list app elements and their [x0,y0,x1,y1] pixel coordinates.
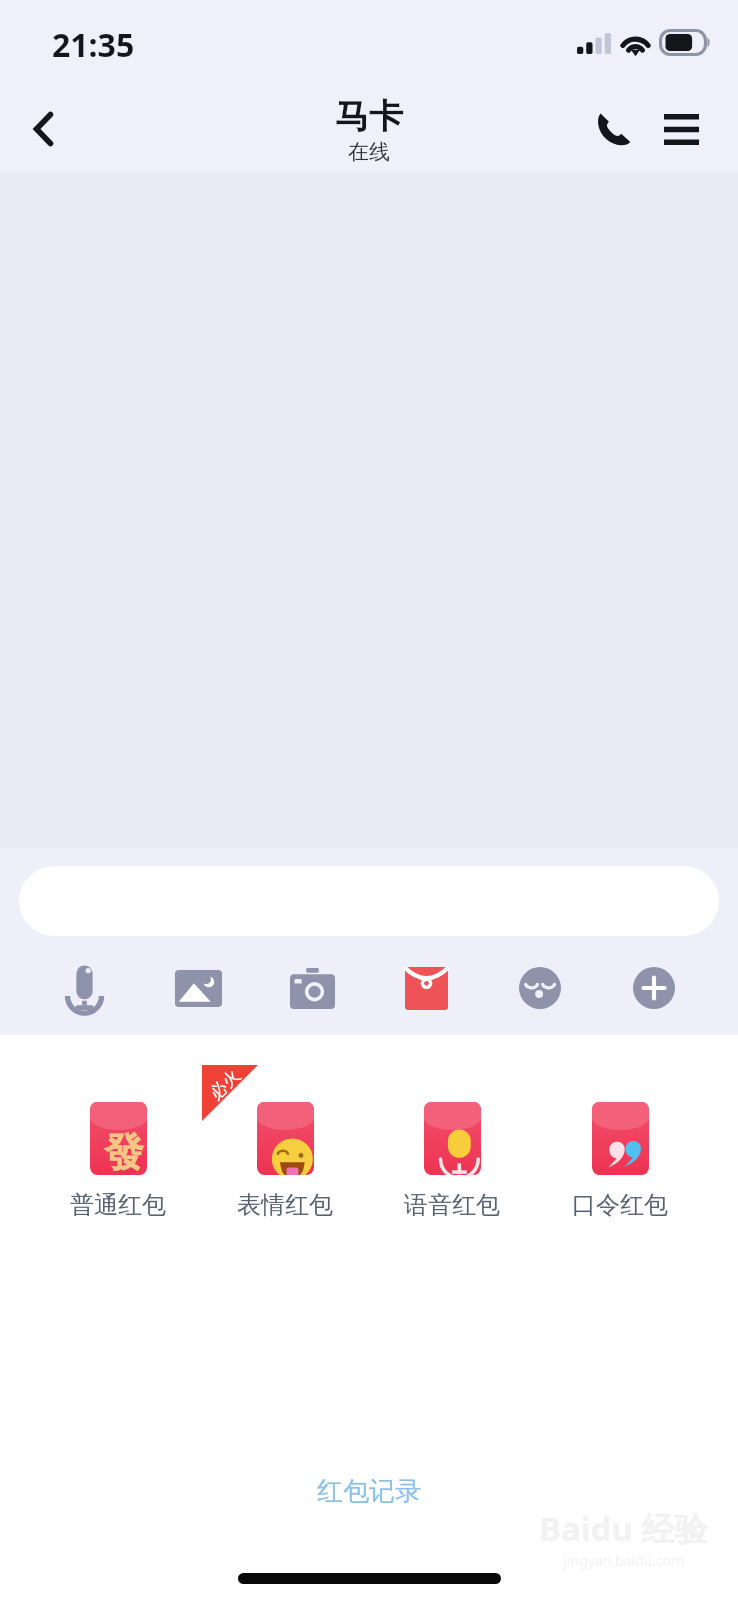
button[interactable]: 發 [34,1102,201,1220]
staticText: 马卡 [335,95,403,138]
button[interactable]: 语音红包 [368,1102,536,1220]
staticText: 口令红包 [572,1190,668,1220]
button[interactable]: 红包记录 [317,1475,421,1508]
staticText: 21:35 [52,23,135,67]
staticText: Baidu 经验 [539,1506,708,1551]
staticText: 在线 [348,139,390,165]
button[interactable]: Voice message [27,948,141,1028]
button[interactable]: 表情红包 [201,1102,368,1220]
staticText: 表情红包 [237,1190,333,1220]
staticText: jingyan.baidu.com [563,1551,685,1570]
staticText: 發 [104,1127,144,1177]
button[interactable]: More [597,948,711,1028]
staticText: 语音红包 [404,1190,500,1220]
button[interactable]: Camera [255,948,369,1028]
staticText: 普通红包 [70,1190,166,1220]
button[interactable]: Emoji [483,948,597,1028]
button[interactable]: Red packet [369,948,483,1028]
button[interactable]: Photos [141,948,255,1028]
button[interactable]: 口令红包 [536,1102,704,1220]
button[interactable]: Call [570,86,656,172]
staticText: 必火 [206,1065,244,1104]
button[interactable]: Menu [638,86,724,172]
button[interactable]: Back [0,85,86,173]
